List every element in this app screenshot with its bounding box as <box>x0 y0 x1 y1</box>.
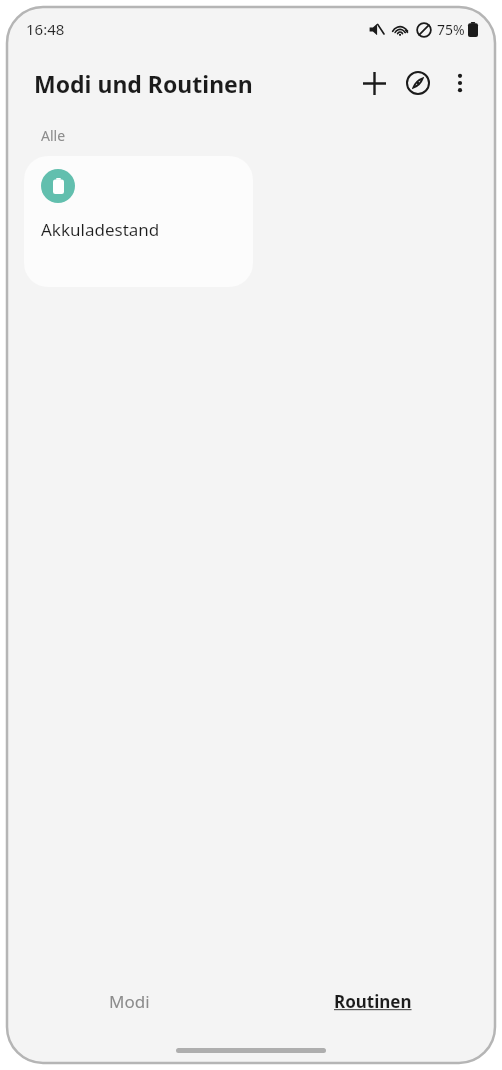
button[interactable]: Routinen <box>251 978 494 1024</box>
button[interactable]: Modi <box>8 978 251 1024</box>
staticText: Modi <box>109 990 150 1013</box>
staticText: Routinen <box>334 990 412 1013</box>
button[interactable]: More options <box>440 63 480 103</box>
staticText: Alle <box>41 126 66 145</box>
button[interactable]: Akkuladestand <box>24 156 253 287</box>
button[interactable]: Discover <box>396 61 440 105</box>
staticText: Modi und Routinen <box>34 68 253 99</box>
staticText: Akkuladestand <box>41 218 160 241</box>
staticText: 16:48 <box>26 19 65 39</box>
staticText: 75% <box>437 20 465 39</box>
button[interactable]: Add <box>352 61 396 105</box>
